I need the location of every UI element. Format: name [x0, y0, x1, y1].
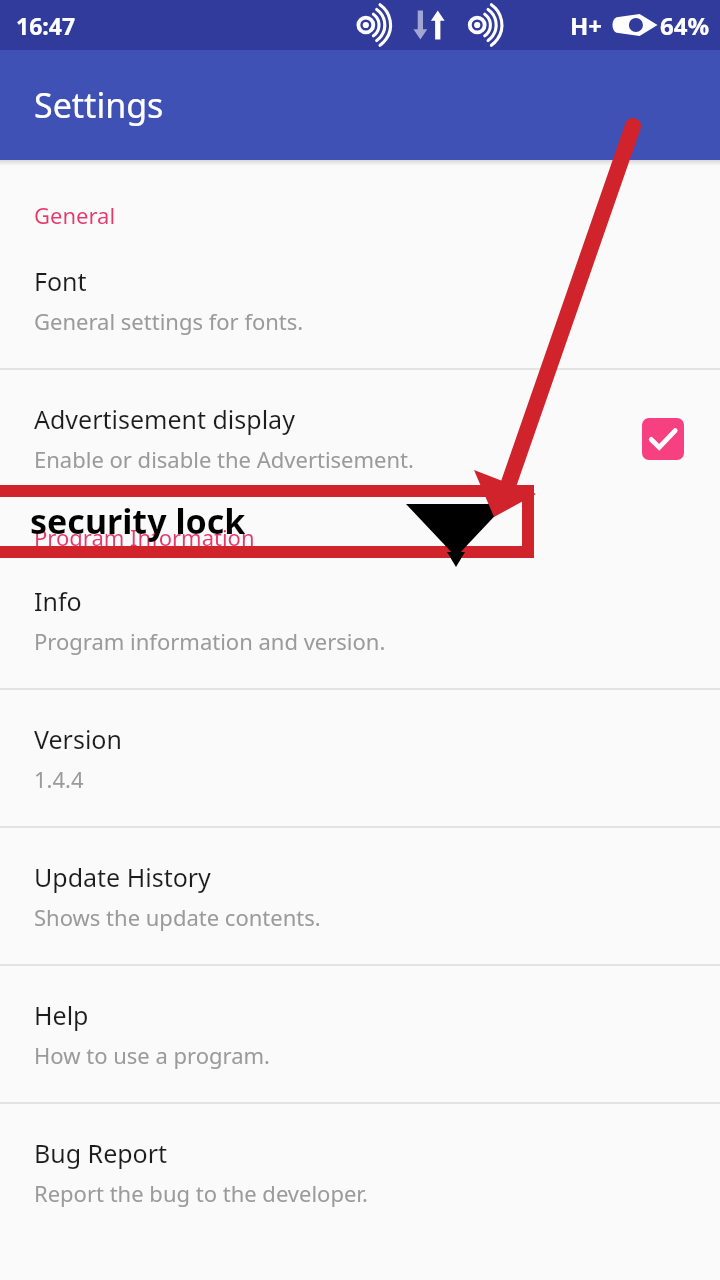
staticText: General settings for fonts. — [34, 306, 304, 336]
staticText: 64% — [660, 9, 710, 42]
staticText: Program Information — [34, 522, 255, 552]
staticText: Version — [34, 722, 122, 756]
staticText: 16:47 — [16, 10, 76, 41]
button[interactable]: Info — [0, 552, 720, 688]
staticText: 1.4.4 — [34, 764, 84, 794]
staticText: Settings — [34, 82, 164, 128]
staticText: Shows the update contents. — [34, 902, 321, 932]
staticText: Report the bug to the developer. — [34, 1178, 368, 1208]
button[interactable]: Advertisement display — [0, 370, 720, 508]
staticText: Advertisement display — [34, 402, 295, 436]
button[interactable]: Bug Report — [0, 1104, 720, 1240]
staticText: Help — [34, 998, 89, 1032]
staticText: General — [34, 200, 116, 230]
button[interactable]: Update History — [0, 828, 720, 964]
staticText: Update History — [34, 860, 211, 894]
button[interactable]: Help — [0, 966, 720, 1102]
staticText: Enable or disable the Advertisement. — [34, 444, 414, 474]
staticText: H+ — [570, 9, 603, 42]
staticText: security lock — [30, 498, 246, 544]
staticText: Font — [34, 264, 87, 298]
staticText: How to use a program. — [34, 1040, 270, 1070]
staticText: Program information and version. — [34, 626, 386, 656]
button[interactable]: Advertisement display checkbox, checked — [642, 418, 684, 460]
staticText: Bug Report — [34, 1136, 168, 1170]
staticText: Info — [34, 584, 82, 618]
button[interactable]: Font — [0, 230, 720, 368]
button[interactable]: Version — [0, 690, 720, 826]
